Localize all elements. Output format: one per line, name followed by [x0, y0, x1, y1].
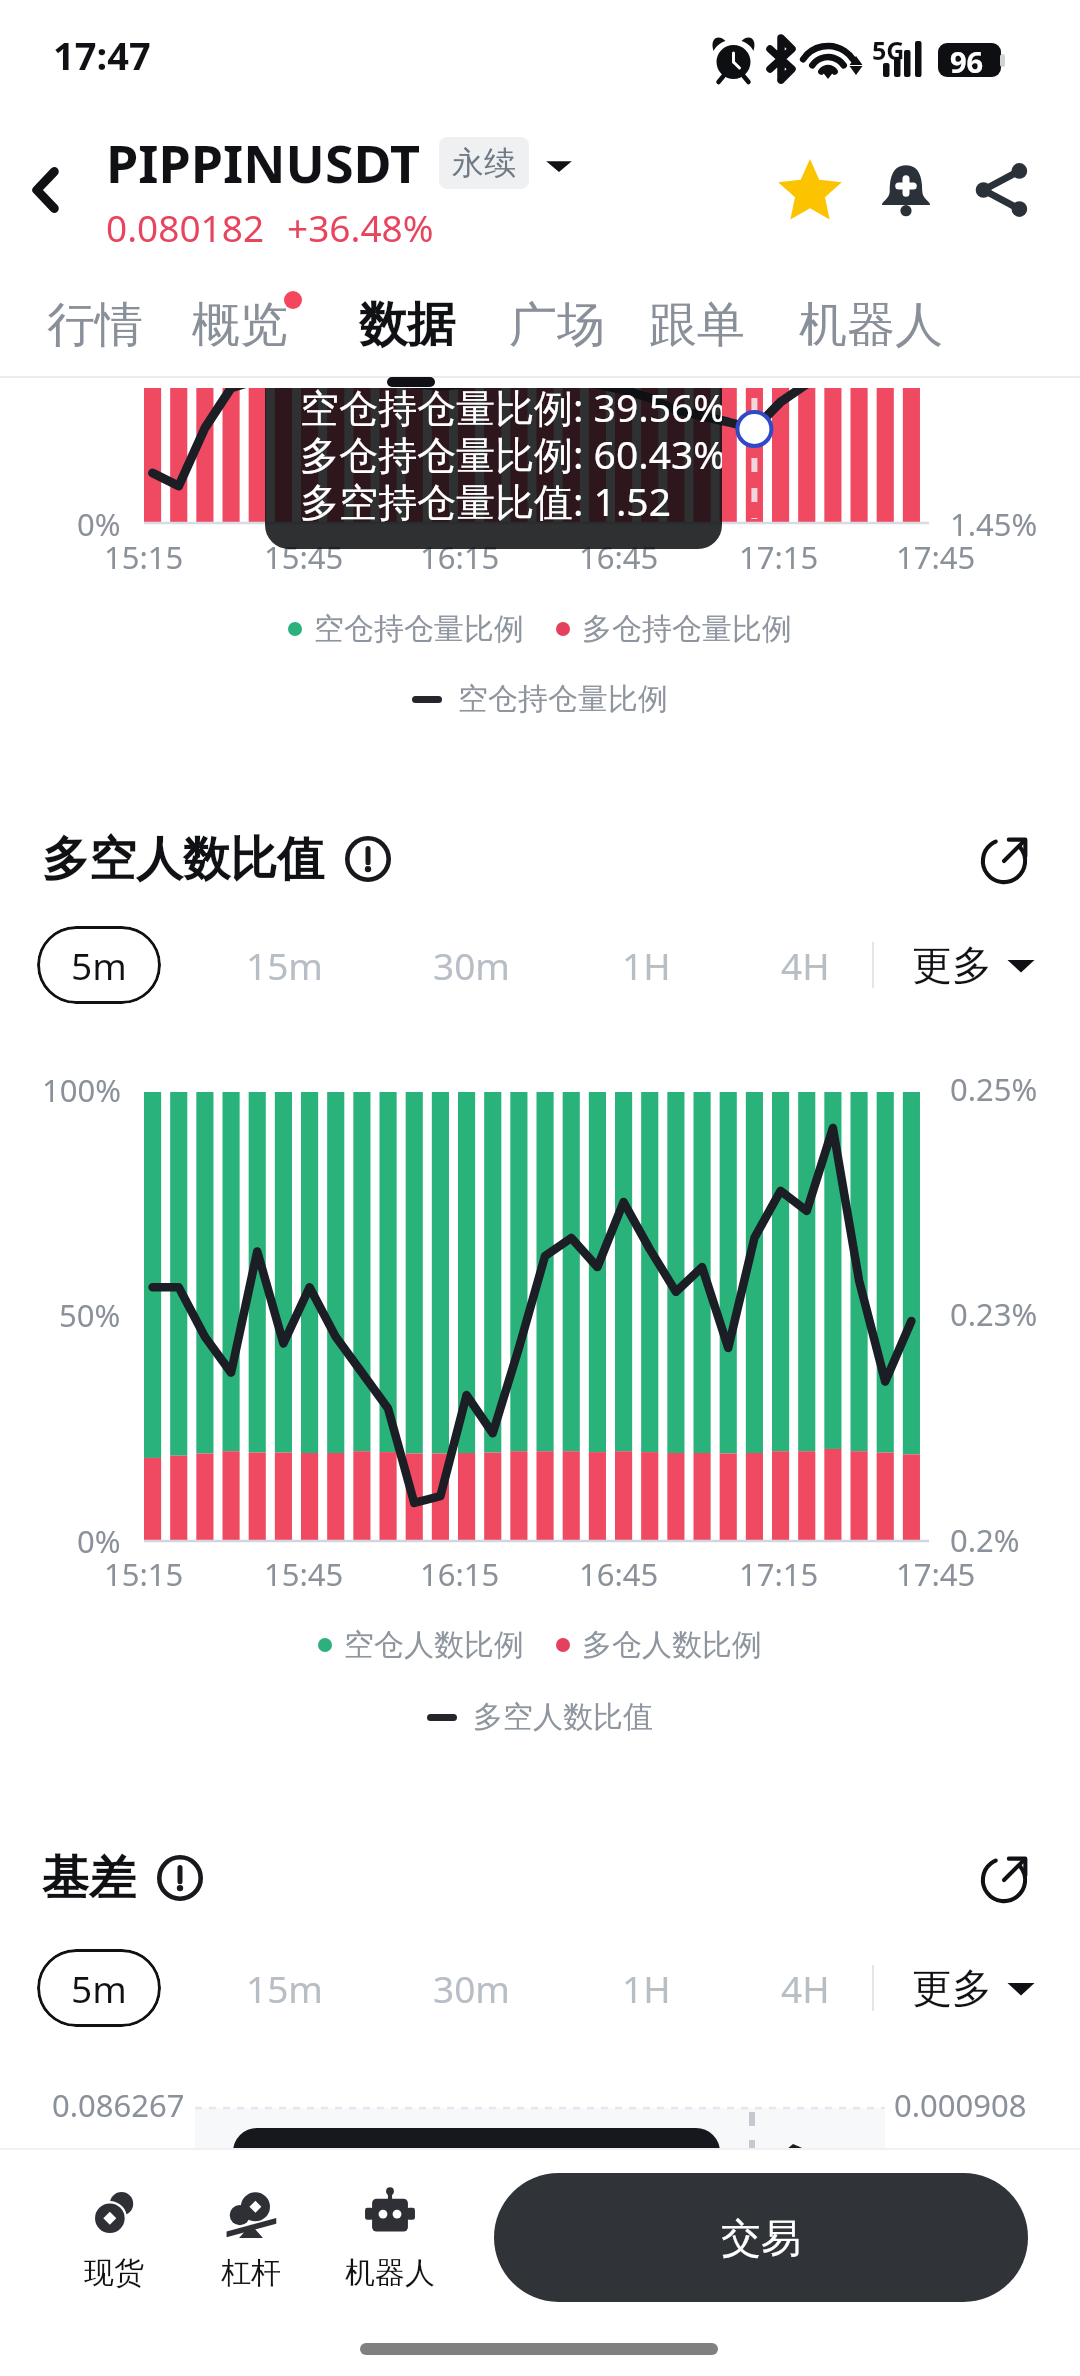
button[interactable]: 5m — [37, 1949, 161, 2027]
button[interactable]: 跟单 — [649, 295, 745, 357]
button[interactable]: 1H — [622, 926, 671, 1004]
staticText: 概览 — [192, 295, 288, 355]
staticText: 0.080182 — [106, 202, 265, 252]
staticText: 杠杆 — [221, 2254, 281, 2292]
staticText: 0.2% — [950, 1519, 1020, 1561]
staticText: 15:15 — [104, 536, 184, 578]
staticText: 现货 — [84, 2254, 144, 2292]
button[interactable]: 交易 — [494, 2173, 1028, 2302]
staticText: 5m — [71, 940, 127, 990]
staticText: 15:45 — [264, 536, 344, 578]
other: Info — [152, 1850, 208, 1906]
staticText: 16:15 — [420, 1553, 500, 1595]
staticText: 0.25% — [950, 1068, 1038, 1110]
button[interactable]: 4H — [781, 1949, 830, 2027]
staticText: 1H — [622, 1963, 671, 2013]
button[interactable]: Favorite — [762, 142, 858, 238]
staticText: 0.000908 — [894, 2084, 1027, 2126]
button[interactable]: Open full screen — [976, 833, 1032, 889]
staticText: 0.086267 — [52, 2084, 185, 2126]
staticText: 96 — [950, 42, 984, 81]
staticText: 多仓人数比例 — [582, 1626, 762, 1664]
button[interactable]: 机器人 — [799, 295, 943, 357]
staticText: 5m — [71, 1963, 127, 2013]
staticText: 多空人数比值 — [42, 830, 324, 889]
staticText: 4H — [781, 940, 830, 990]
button[interactable]: 更多 — [912, 1949, 1036, 2027]
staticText: 15:15 — [104, 1553, 184, 1595]
button[interactable]: 更多 — [912, 926, 1036, 1004]
staticText: 多仓持仓量比例: 60.43% — [300, 427, 722, 480]
staticText: 1H — [622, 940, 671, 990]
button[interactable]: 多空人数比值 — [42, 819, 396, 899]
staticText: 15m — [246, 940, 323, 990]
staticText: 0% — [77, 503, 121, 545]
button[interactable]: 杠杆 — [191, 2176, 311, 2306]
button[interactable]: Back — [0, 144, 92, 236]
staticText: 100% — [42, 1069, 121, 1111]
button[interactable]: 数据 — [359, 295, 455, 357]
button[interactable]: 概览 — [192, 295, 288, 357]
staticText: 多空持仓量比值: 1.52 — [300, 474, 671, 527]
other: Info — [340, 831, 396, 887]
staticText: 机器人 — [345, 2254, 435, 2292]
button[interactable]: 机器人 — [330, 2176, 450, 2306]
staticText: 30m — [433, 940, 510, 990]
staticText: 广场 — [509, 295, 605, 355]
staticText: 更多 — [912, 1963, 992, 2013]
staticText: PIPPINUSDT — [106, 127, 421, 198]
button[interactable]: 基差 — [42, 1838, 208, 1918]
staticText: 17:47 — [53, 29, 151, 81]
staticText: 16:45 — [579, 536, 659, 578]
button[interactable]: 30m — [433, 926, 510, 1004]
staticText: 16:15 — [420, 536, 500, 578]
staticText: 5G — [872, 33, 905, 67]
button[interactable]: 15m — [246, 926, 323, 1004]
button[interactable]: 15m — [246, 1949, 323, 2027]
staticText: 更多 — [912, 940, 992, 990]
staticText: 0% — [77, 1520, 121, 1562]
staticText: 机器人 — [799, 295, 943, 355]
staticText: 基差 — [42, 1849, 136, 1908]
button[interactable]: 4H — [781, 926, 830, 1004]
button[interactable]: 现货 — [54, 2176, 174, 2306]
staticText: 15m — [246, 1963, 323, 2013]
staticText: 17:45 — [896, 536, 976, 578]
staticText: 数据 — [359, 295, 455, 355]
button[interactable]: 1H — [622, 1949, 671, 2027]
staticText: 空仓持仓量比例: 39.56% — [300, 388, 722, 433]
staticText: 空仓人数比例 — [344, 1626, 524, 1664]
staticText: +36.48% — [287, 202, 434, 252]
staticText: 空仓持仓量比例 — [458, 680, 668, 718]
staticText: 多仓持仓量比例 — [582, 610, 792, 648]
staticText: 永续 — [452, 143, 516, 183]
staticText: 跟单 — [649, 295, 745, 355]
staticText: 17:15 — [739, 536, 819, 578]
staticText: 17:45 — [896, 1553, 976, 1595]
button[interactable]: 行情 — [47, 295, 143, 357]
button[interactable]: Open full screen — [976, 1852, 1032, 1908]
button[interactable]: Share — [954, 142, 1050, 238]
staticText: 16:45 — [579, 1553, 659, 1595]
staticText: 17:15 — [739, 1553, 819, 1595]
staticText: 0.23% — [950, 1293, 1038, 1335]
button[interactable]: Price alert — [858, 142, 954, 238]
staticText: 多空人数比值 — [473, 1698, 653, 1736]
button[interactable]: 5m — [37, 926, 161, 1004]
staticText: 交易 — [721, 2213, 801, 2263]
staticText: 30m — [433, 1963, 510, 2013]
staticText: 4H — [781, 1963, 830, 2013]
button[interactable]: 广场 — [509, 295, 605, 357]
button[interactable]: 30m — [433, 1949, 510, 2027]
staticText: 1.45% — [950, 503, 1038, 545]
staticText: 行情 — [47, 295, 143, 355]
staticText: 50% — [59, 1294, 121, 1336]
staticText: 空仓持仓量比例 — [314, 610, 524, 648]
staticText: 15:45 — [264, 1553, 344, 1595]
